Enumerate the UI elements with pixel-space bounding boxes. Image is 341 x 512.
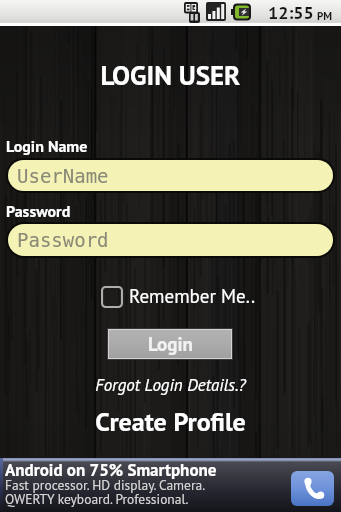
button[interactable]: Password	[8, 224, 333, 256]
button[interactable]: Android on 75% Smartphone	[0, 458, 341, 512]
staticText: Fast processor. HD display. Camera.	[5, 476, 206, 493]
staticText: Password	[17, 229, 109, 251]
button[interactable]: Create Profile	[0, 405, 341, 439]
staticText: Login	[148, 332, 193, 357]
button[interactable]: Forgot Login Details.?	[0, 374, 341, 396]
button[interactable]: Remember Me..	[101, 284, 256, 309]
staticText: PM	[317, 9, 333, 23]
staticText: Login Name	[6, 136, 88, 157]
staticText: Android on 75% Smartphone	[5, 459, 217, 481]
button[interactable]: Login	[109, 330, 231, 358]
staticText: Remember Me..	[129, 284, 256, 309]
staticText: UserName	[17, 165, 109, 187]
staticText: QWERTY keyboard. Professional.	[5, 490, 189, 507]
staticText: Password	[6, 201, 71, 222]
staticText: LOGIN USER	[0, 58, 341, 93]
button[interactable]: Call advertiser	[291, 471, 334, 506]
button[interactable]: UserName	[8, 160, 333, 191]
staticText: 12:55	[268, 1, 314, 24]
